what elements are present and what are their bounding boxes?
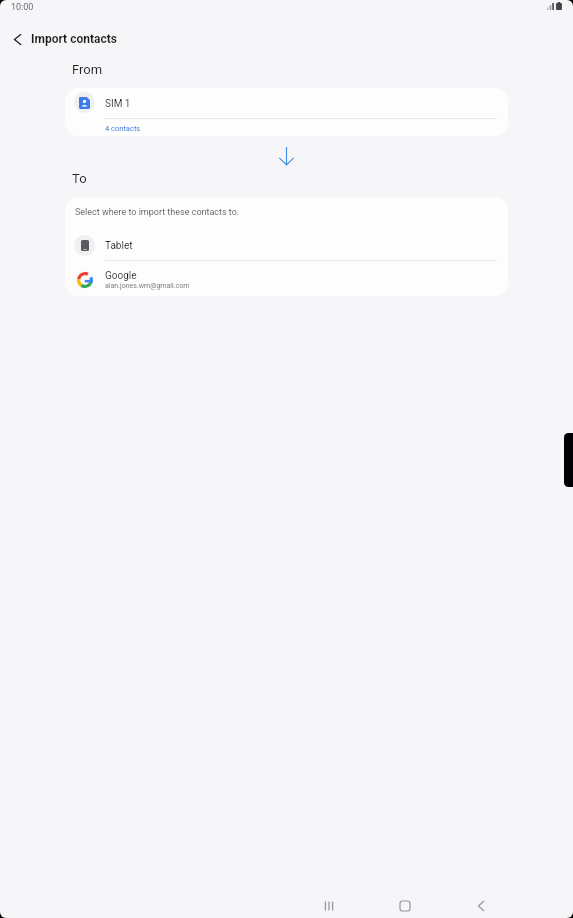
staticText: Tablet [105, 240, 133, 252]
button[interactable]: SIM 1 [65, 88, 508, 117]
staticText: 10:00 [11, 2, 34, 13]
button[interactable]: Home [381, 895, 428, 917]
button[interactable]: Recent apps [305, 895, 352, 917]
staticText: Google [105, 270, 137, 282]
staticText: To [72, 171, 87, 186]
staticText: Import contacts [31, 32, 117, 46]
staticText: Select where to import these contacts to… [75, 207, 240, 218]
button[interactable]: Back [457, 895, 504, 917]
staticText: 4 contacts [105, 124, 141, 133]
button[interactable]: Tablet [65, 230, 508, 260]
staticText: alan.jones.wm@gmail.com [105, 282, 190, 290]
button[interactable]: Back [5, 27, 29, 51]
staticText: From [72, 62, 103, 77]
button[interactable]: Google [65, 261, 508, 296]
staticText: SIM 1 [105, 98, 131, 110]
